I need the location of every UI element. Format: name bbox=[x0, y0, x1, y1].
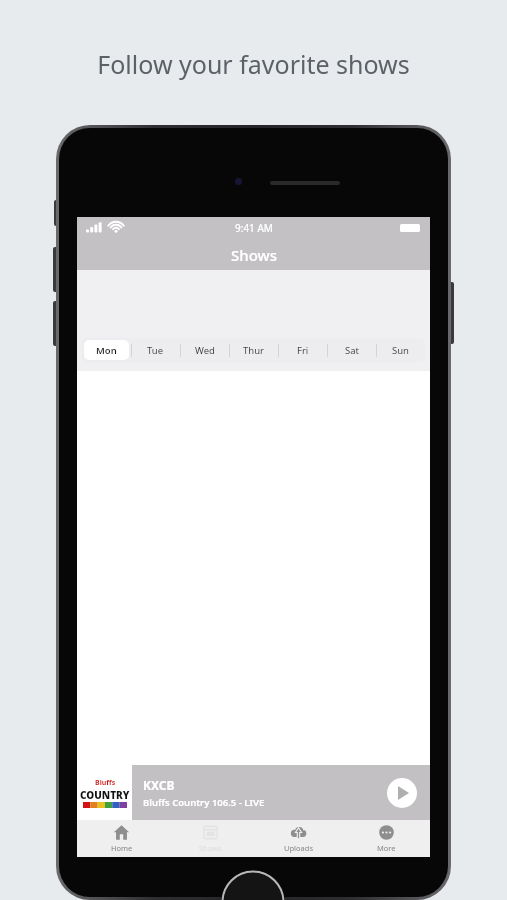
button[interactable]: Home bbox=[77, 820, 166, 857]
staticText: Bluffs Country 106.5 - LIVE bbox=[143, 796, 265, 809]
staticText: Thur bbox=[243, 344, 264, 357]
button[interactable]: Wed bbox=[180, 338, 229, 362]
staticText: Home bbox=[111, 843, 133, 853]
staticText: Sun bbox=[392, 344, 409, 357]
button[interactable]: Fri bbox=[278, 338, 327, 362]
button[interactable]: Bluffs bbox=[77, 765, 430, 820]
staticText: Tue bbox=[147, 344, 164, 357]
staticText: KXCB bbox=[143, 777, 175, 793]
staticText: COUNTRY bbox=[80, 788, 130, 802]
staticText: Bluffs bbox=[95, 778, 116, 788]
staticText: Fri bbox=[297, 344, 309, 357]
button[interactable]: Sun bbox=[376, 338, 425, 362]
staticText: Uploads bbox=[284, 843, 313, 853]
button[interactable]: Play bbox=[387, 778, 417, 808]
staticText: Shows bbox=[199, 843, 222, 853]
staticText: Sat bbox=[345, 344, 359, 357]
staticText: Shows bbox=[231, 245, 277, 265]
button[interactable]: Tue bbox=[131, 338, 180, 362]
staticText: 9:41 AM bbox=[235, 221, 273, 235]
button[interactable]: Sat bbox=[327, 338, 376, 362]
staticText: More bbox=[377, 843, 396, 853]
staticText: Follow your favorite shows bbox=[0, 47, 507, 81]
button[interactable]: Mon bbox=[82, 338, 131, 362]
button[interactable]: More bbox=[342, 820, 430, 857]
button[interactable]: Uploads bbox=[254, 820, 342, 857]
staticText: Wed bbox=[195, 344, 215, 357]
staticText: Mon bbox=[96, 344, 117, 357]
button[interactable]: Thur bbox=[229, 338, 278, 362]
